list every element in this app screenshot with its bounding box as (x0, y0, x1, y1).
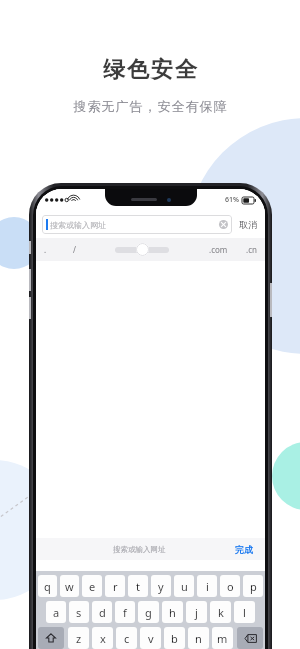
button[interactable]: 搜索或输入网址 (42, 215, 232, 234)
button[interactable]: k (210, 601, 231, 623)
button[interactable]: / (73, 244, 76, 255)
staticText: u (181, 579, 188, 594)
staticText: s (76, 605, 82, 620)
staticText: a (53, 605, 60, 620)
staticText: o (227, 579, 234, 594)
staticText: i (206, 579, 209, 594)
staticText: n (195, 631, 202, 646)
button[interactable]: d (92, 601, 112, 623)
button[interactable]: .cn (246, 244, 257, 255)
button[interactable]: .com (209, 244, 228, 255)
staticText: 完成 (235, 544, 253, 555)
button[interactable]: r (105, 575, 125, 597)
button[interactable]: g (138, 601, 159, 623)
staticText: f (123, 605, 127, 620)
button[interactable]: q (38, 575, 57, 597)
staticText: h (169, 605, 176, 620)
staticText: v (148, 631, 154, 646)
button[interactable]: e (82, 575, 102, 597)
button[interactable]: u (174, 575, 194, 597)
staticText: 搜索或输入网址 (113, 545, 166, 554)
button[interactable] (136, 243, 149, 256)
button[interactable]: . (44, 244, 47, 255)
staticText: e (89, 579, 96, 594)
staticText: q (44, 579, 51, 594)
button[interactable]: y (151, 575, 171, 597)
staticText: 搜索无广告，安全有保障 (73, 98, 227, 114)
button[interactable]: j (186, 601, 207, 623)
staticText: g (145, 605, 152, 620)
button[interactable]: n (188, 627, 209, 649)
staticText: p (250, 579, 257, 594)
button[interactable]: h (162, 601, 183, 623)
staticText: d (99, 605, 106, 620)
staticText: 搜索或输入网址 (50, 220, 106, 230)
staticText: j (195, 605, 198, 620)
button[interactable]: i (197, 575, 217, 597)
staticText: r (113, 579, 118, 594)
staticText: t (136, 579, 140, 594)
button[interactable]: Shift (38, 627, 64, 649)
staticText: c (124, 631, 130, 646)
button[interactable]: w (60, 575, 79, 597)
button[interactable]: c (116, 627, 137, 649)
staticText: x (100, 631, 106, 646)
button[interactable]: 完成 (233, 542, 255, 557)
staticText: 61% (225, 195, 239, 205)
staticText: l (243, 605, 246, 620)
button[interactable]: l (234, 601, 255, 623)
button[interactable]: f (115, 601, 135, 623)
staticText: m (217, 631, 228, 646)
staticText: 取消 (239, 219, 257, 230)
button[interactable]: 取消 (237, 217, 259, 232)
button[interactable]: z (68, 627, 89, 649)
button[interactable]: a (46, 601, 66, 623)
button[interactable]: b (164, 627, 185, 649)
button[interactable]: o (220, 575, 240, 597)
staticText: k (218, 605, 224, 620)
button[interactable]: m (212, 627, 233, 649)
button[interactable]: t (128, 575, 148, 597)
button[interactable]: x (92, 627, 113, 649)
button[interactable]: v (140, 627, 161, 649)
staticText: z (76, 631, 82, 646)
button[interactable]: s (69, 601, 89, 623)
button[interactable]: Backspace (237, 627, 263, 649)
staticText: y (158, 579, 164, 594)
staticText: 绿色安全 (102, 56, 198, 84)
button[interactable]: p (243, 575, 263, 597)
button[interactable]: Clear (219, 220, 228, 229)
staticText: w (65, 579, 74, 594)
staticText: b (171, 631, 178, 646)
